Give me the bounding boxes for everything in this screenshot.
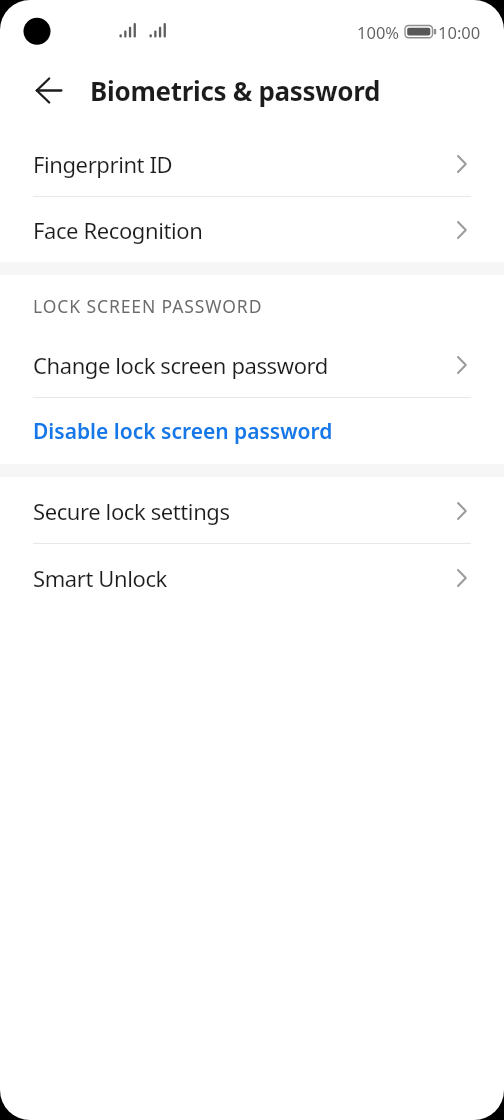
staticText: LOCK SCREEN PASSWORD (33, 294, 263, 318)
button[interactable]: Secure lock settings (0, 477, 504, 544)
staticText: 100% (357, 21, 400, 43)
staticText: Disable lock screen password (33, 417, 333, 446)
button[interactable]: Face Recognition (0, 197, 504, 263)
staticText: Biometrics & password (90, 73, 381, 108)
button[interactable]: Disable lock screen password (0, 398, 504, 465)
staticText: Face Recognition (33, 215, 203, 245)
staticText: Change lock screen password (33, 350, 328, 380)
button[interactable]: Fingerprint ID (0, 130, 504, 197)
button[interactable]: Change lock screen password (0, 331, 504, 398)
staticText: Secure lock settings (33, 496, 230, 526)
staticText: 10:00 (438, 21, 481, 43)
button[interactable] (26, 76, 72, 104)
button[interactable]: Smart Unlock (0, 544, 504, 611)
staticText: Fingerprint ID (33, 149, 173, 179)
staticText: Smart Unlock (33, 563, 167, 593)
